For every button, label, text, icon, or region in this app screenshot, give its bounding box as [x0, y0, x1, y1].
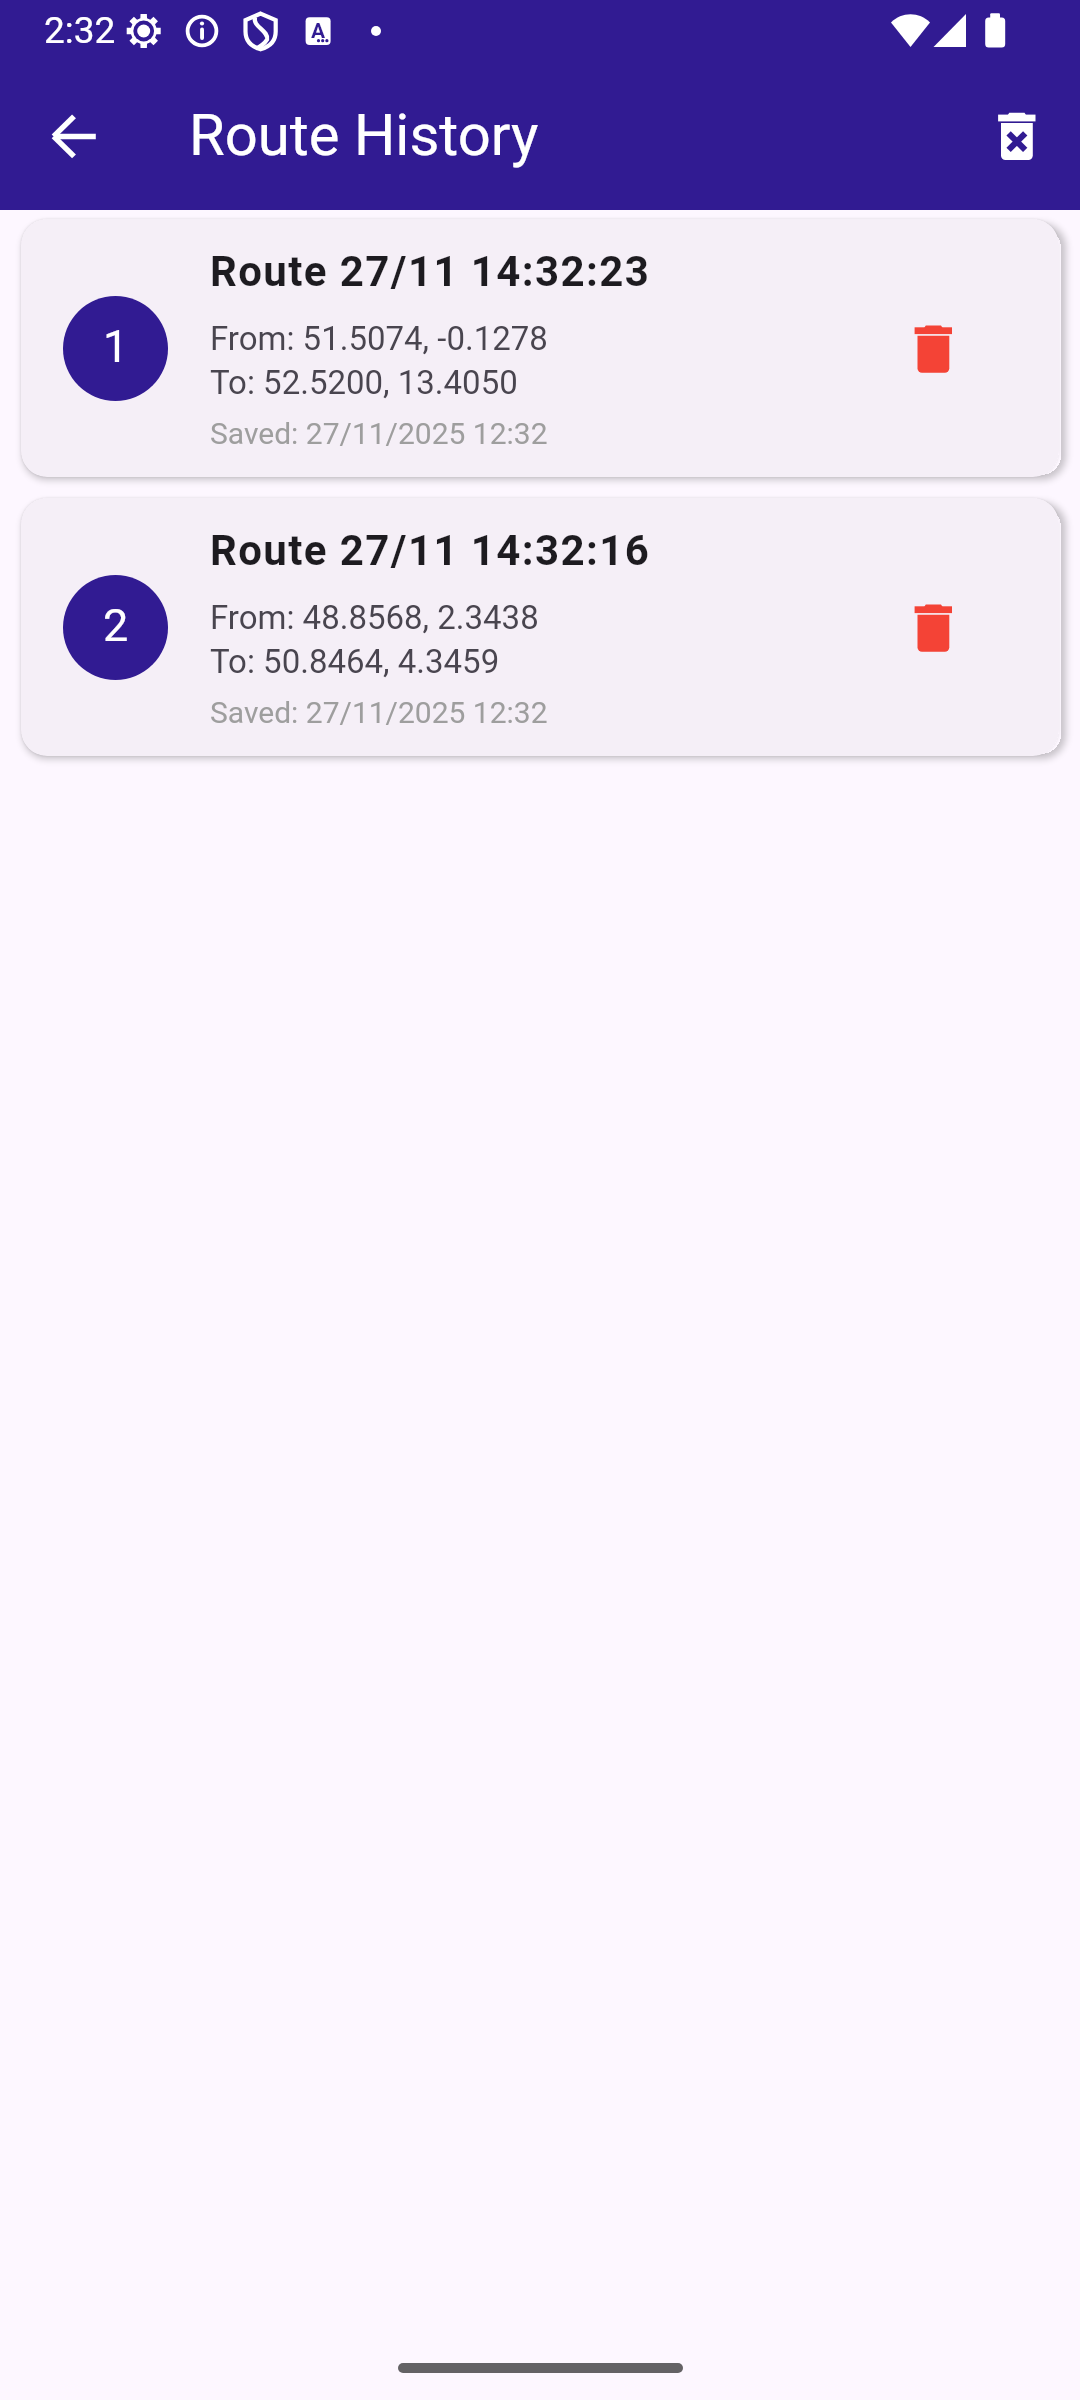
staticText: Saved: 27/11/2025 12:32 [210, 695, 548, 730]
staticText: 2:32 [44, 9, 116, 52]
staticText: From: 48.8568, 2.3438 [210, 598, 539, 637]
staticText: 1 [103, 320, 129, 373]
button[interactable]: Back [29, 88, 125, 184]
button[interactable]: Delete route [885, 580, 981, 676]
button[interactable]: Clear all history [969, 89, 1065, 185]
staticText: 2 [103, 599, 129, 652]
staticText: Saved: 27/11/2025 12:32 [210, 416, 548, 451]
staticText: From: 51.5074, -0.1278 [210, 319, 548, 358]
staticText: Route 27/11 14:32:23 [210, 247, 651, 296]
staticText: Route 27/11 14:32:16 [210, 526, 651, 575]
staticText: To: 50.8464, 4.3459 [210, 642, 500, 681]
staticText: A [311, 19, 326, 44]
button[interactable]: 1 [21, 219, 1059, 477]
button[interactable]: Delete route [885, 301, 981, 397]
staticText: Route History [189, 101, 539, 169]
button[interactable]: 2 [21, 498, 1059, 756]
staticText: To: 52.5200, 13.4050 [210, 363, 518, 402]
